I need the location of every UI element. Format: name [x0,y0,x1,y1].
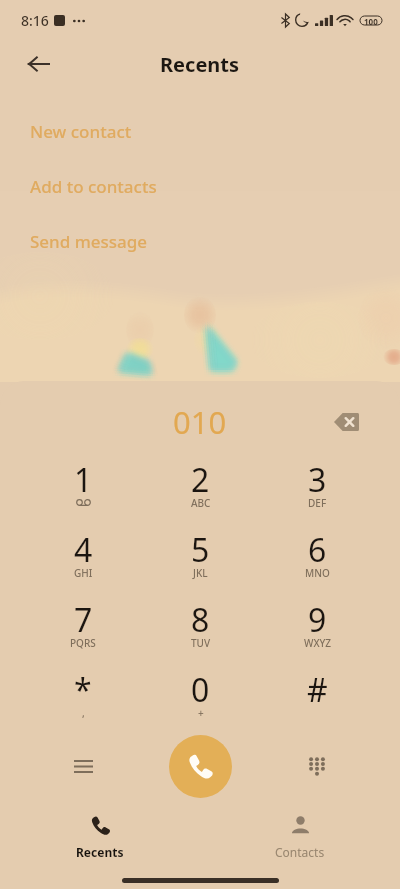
button[interactable]: Backspace [326,402,366,442]
button[interactable]: 5 [142,523,259,593]
button[interactable]: 9 [259,593,376,663]
staticText: 100 [364,16,378,25]
staticText: Recents [76,844,124,860]
staticText: 0 [191,668,210,712]
button[interactable]: Back [16,42,60,86]
button[interactable]: 7 [24,593,142,663]
button[interactable]: 1 [24,453,142,523]
staticText: 8:16 [21,11,49,30]
button[interactable]: 3 [259,453,376,523]
staticText: 6 [308,528,327,572]
staticText: + [198,706,204,720]
button[interactable]: Send message [0,218,400,273]
staticText: Contacts [275,844,325,860]
staticText: JKL [193,566,208,580]
staticText: GHI [74,566,93,580]
staticText: Add to contacts [30,175,157,198]
button[interactable]: Keypad [297,746,337,786]
staticText: 1 [74,458,93,502]
button[interactable]: 4 [24,523,142,593]
staticText: * [74,668,92,712]
staticText: 8 [191,598,210,642]
staticText: TUV [191,636,211,650]
button[interactable]: New contact [0,108,400,163]
staticText: 4 [74,528,93,572]
button[interactable]: 8 [142,593,259,663]
button[interactable]: 2 [142,453,259,523]
staticText: 9 [308,598,327,642]
staticText: ABC [191,496,211,510]
staticText: DEF [308,496,327,510]
staticText: Send message [30,230,148,253]
staticText: New contact [30,120,132,143]
staticText: 010 [173,401,227,443]
staticText: 3 [308,458,327,502]
button[interactable]: # [259,663,376,733]
staticText: MNO [305,566,330,580]
button[interactable]: Contacts [200,815,400,861]
staticText: # [307,668,328,712]
staticText: Recents [160,51,240,78]
staticText: 5 [191,528,210,572]
button[interactable]: 0 [142,663,259,733]
button[interactable]: More options [63,746,103,786]
staticText: , [82,706,85,720]
staticText: WXYZ [304,636,332,650]
button[interactable]: Add to contacts [0,163,400,218]
staticText: PQRS [70,636,96,650]
staticText: 2 [191,458,210,502]
button[interactable]: Call [169,735,232,798]
staticText: 7 [74,598,93,642]
button[interactable]: 6 [259,523,376,593]
button[interactable]: * [24,663,142,733]
button[interactable]: Recents [0,815,200,861]
